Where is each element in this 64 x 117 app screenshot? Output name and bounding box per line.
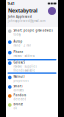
button[interactable]: Bronze [6, 102, 58, 111]
staticText: Phone [13, 50, 23, 54]
button[interactable]: Galaxy S [6, 60, 58, 72]
button[interactable]: Walnut t [6, 74, 58, 84]
staticText: contacts [13, 88, 23, 92]
staticText: Walnut t [13, 75, 25, 79]
staticText: properties [13, 79, 28, 82]
button[interactable]: Smart: people grew advices [6, 27, 58, 38]
staticText: today [13, 33, 20, 36]
staticText: detected [13, 97, 26, 101]
button[interactable]: Pandora [6, 93, 58, 102]
staticText: Nextabytral [8, 7, 38, 14]
staticText: Galaxy S [13, 61, 24, 64]
staticText: 9:41 [8, 1, 15, 6]
staticText: Smart: people grew advices [13, 29, 52, 32]
staticText: johnappleseed@gmail.com [8, 19, 45, 23]
staticText: ok [13, 106, 16, 110]
staticText: Smart i [13, 85, 23, 88]
button[interactable]: Account [48, 7, 56, 15]
staticText: Autop [13, 40, 22, 43]
button[interactable]: Smart i [6, 84, 58, 93]
staticText: reviews · address [13, 54, 34, 58]
button[interactable]: Phone [6, 49, 58, 59]
staticText: Pandora [13, 94, 26, 97]
staticText: friends available [13, 69, 35, 72]
button[interactable]: Autop [6, 38, 58, 49]
staticText: John Appleseed [8, 15, 32, 18]
staticText: Bronze [13, 103, 23, 106]
staticText: mind · 2 min [13, 44, 31, 47]
staticText: reviews · supplies [13, 65, 36, 68]
